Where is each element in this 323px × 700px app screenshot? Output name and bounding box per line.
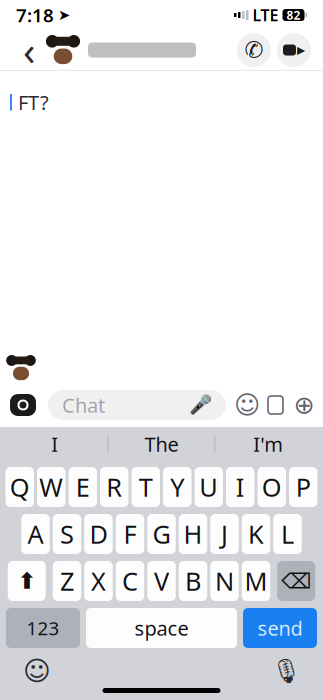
staticText: LTE xyxy=(252,4,278,26)
button[interactable]: L xyxy=(273,514,302,554)
button[interactable]: I xyxy=(2,426,108,462)
button[interactable]: I xyxy=(226,467,254,507)
button[interactable]: Dictate xyxy=(269,654,303,688)
staticText: T xyxy=(139,470,153,504)
staticText: ➤ xyxy=(58,7,70,23)
button[interactable]: Chat xyxy=(48,390,226,420)
staticText: ▶ xyxy=(297,44,305,56)
button[interactable]: Z xyxy=(53,561,81,601)
button[interactable]: J xyxy=(210,514,239,554)
staticText: send xyxy=(257,615,302,641)
staticText: ⊕ xyxy=(293,391,314,419)
staticText: ⬆ xyxy=(17,568,36,594)
button[interactable]: H xyxy=(179,514,207,554)
staticText: I'm xyxy=(253,431,283,457)
button[interactable]: I'm xyxy=(215,426,321,462)
staticText: 🎙 xyxy=(271,657,301,685)
staticText: 7:18 xyxy=(16,3,54,27)
staticText: R xyxy=(106,470,122,504)
staticText: Q xyxy=(10,470,30,504)
button[interactable]: Delete xyxy=(277,561,315,601)
staticText: C xyxy=(122,564,138,598)
button[interactable]: Q xyxy=(5,467,34,507)
button[interactable]: Audio call xyxy=(237,33,271,67)
button[interactable]: Camera xyxy=(8,390,38,420)
button[interactable]: Back xyxy=(12,30,46,70)
staticText: The xyxy=(144,431,178,457)
button[interactable]: N xyxy=(210,561,239,601)
staticText: ☺ xyxy=(23,656,51,686)
staticText: U xyxy=(199,470,218,504)
staticText: F xyxy=(123,517,136,551)
staticText: K xyxy=(248,517,264,551)
button[interactable]: Video call xyxy=(277,33,311,67)
staticText: ✆ xyxy=(244,37,263,63)
staticText: L xyxy=(281,517,294,551)
staticText: FT? xyxy=(18,89,49,116)
button[interactable]: Emoji keyboard xyxy=(20,654,54,688)
staticText: S xyxy=(60,517,74,551)
staticText: Chat xyxy=(62,392,105,418)
staticText: ☺ xyxy=(234,391,260,419)
staticText: G xyxy=(152,517,170,551)
staticText: B xyxy=(185,564,201,598)
staticText: H xyxy=(183,517,202,551)
button[interactable]: space xyxy=(86,608,237,648)
staticText: W xyxy=(39,470,63,504)
staticText: A xyxy=(27,517,43,551)
staticText: I xyxy=(51,431,58,457)
button[interactable]: G xyxy=(147,514,176,554)
staticText: ⌫ xyxy=(281,569,311,593)
staticText: space xyxy=(134,615,188,641)
staticText: O xyxy=(262,470,282,504)
button[interactable]: D xyxy=(84,514,113,554)
staticText: Y xyxy=(170,470,184,504)
button[interactable]: S xyxy=(53,514,81,554)
button[interactable]: C xyxy=(116,561,144,601)
button[interactable]: Emoji xyxy=(236,392,258,418)
button[interactable]: More xyxy=(293,392,315,418)
button[interactable]: send xyxy=(243,608,317,648)
staticText: N xyxy=(215,564,234,598)
staticText: 🎤 xyxy=(189,394,212,416)
button[interactable]: V xyxy=(147,561,176,601)
button[interactable]: Stickers xyxy=(268,396,283,414)
staticText: P xyxy=(296,470,311,504)
button[interactable]: O xyxy=(257,467,286,507)
button[interactable]: Y xyxy=(163,467,191,507)
button[interactable]: X xyxy=(84,561,113,601)
button[interactable]: The xyxy=(109,426,214,462)
staticText: Z xyxy=(60,564,74,598)
button[interactable]: K xyxy=(242,514,270,554)
staticText: 123 xyxy=(26,616,59,640)
staticText: E xyxy=(76,470,90,504)
staticText: V xyxy=(154,564,169,598)
button[interactable]: E xyxy=(68,467,97,507)
staticText: I xyxy=(236,470,245,504)
button[interactable]: A xyxy=(21,514,50,554)
button[interactable]: 123 xyxy=(6,608,80,648)
button[interactable]: P xyxy=(289,467,317,507)
button[interactable]: F xyxy=(116,514,144,554)
button[interactable]: B xyxy=(179,561,207,601)
button[interactable]: W xyxy=(37,467,65,507)
staticText: 82 xyxy=(286,7,300,23)
staticText: M xyxy=(244,564,267,598)
staticText: ‹ xyxy=(23,23,35,76)
button[interactable]: U xyxy=(194,467,223,507)
staticText: X xyxy=(91,564,106,598)
button[interactable]: Shift xyxy=(8,561,46,601)
button[interactable]: M xyxy=(242,561,270,601)
button[interactable]: T xyxy=(131,467,160,507)
staticText: J xyxy=(221,517,228,551)
button[interactable]: R xyxy=(100,467,128,507)
staticText: D xyxy=(89,517,107,551)
